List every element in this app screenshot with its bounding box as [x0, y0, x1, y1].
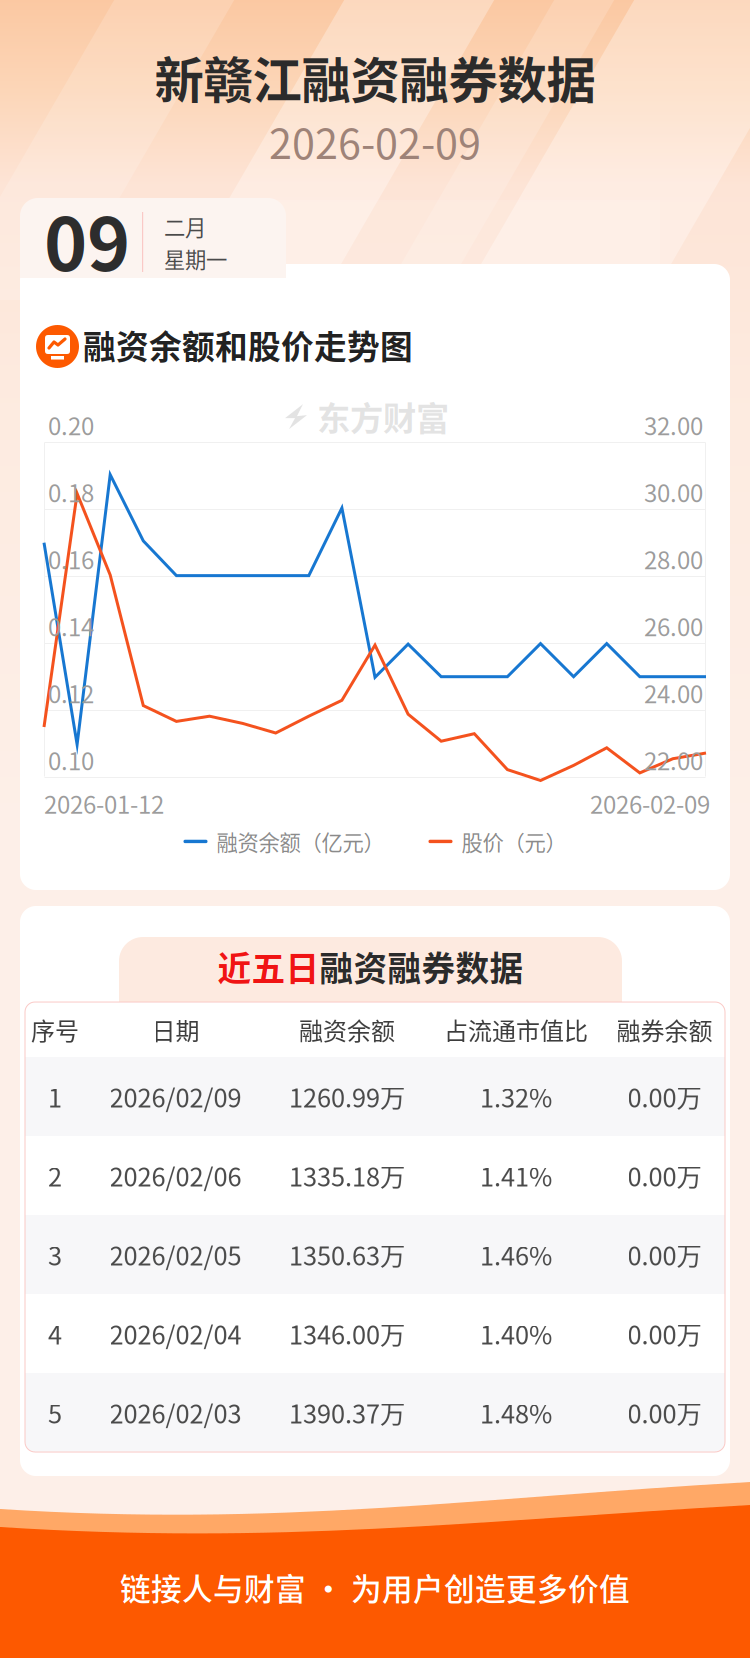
staticText: 1 [48, 1078, 62, 1115]
staticText: 二月 [164, 211, 206, 242]
staticText: 融资余额（亿元） [216, 826, 384, 857]
staticText: 1260.99万 [289, 1078, 405, 1115]
staticText: 1.48% [480, 1394, 552, 1431]
staticText: 1335.18万 [289, 1157, 405, 1194]
staticText: 22.00 [644, 742, 703, 777]
staticText: 2 [48, 1157, 62, 1194]
staticText: 东方财富 [317, 392, 449, 440]
staticText: 5 [48, 1394, 62, 1431]
staticText: 2026-02-09 [590, 786, 710, 821]
staticText: 2026/02/05 [109, 1236, 241, 1273]
staticText: 2026/02/09 [109, 1078, 241, 1115]
staticText: 1350.63万 [289, 1236, 405, 1273]
staticText: 24.00 [644, 675, 703, 710]
staticText: 30.00 [644, 474, 703, 509]
staticText: 2026/02/06 [109, 1157, 241, 1194]
staticText: 2026/02/03 [109, 1394, 241, 1431]
staticText: 1.40% [480, 1315, 552, 1352]
staticText: 0.18 [48, 474, 94, 509]
staticText: 0.14 [48, 608, 94, 643]
staticText: 1346.00万 [289, 1315, 405, 1352]
staticText: 链接人与财富 · 为用户创造更多价值 [120, 1565, 630, 1609]
staticText: 融资余额 [299, 1012, 395, 1047]
staticText: 1.41% [480, 1157, 552, 1194]
staticText: 近五日 [217, 942, 319, 991]
staticText: 1.32% [480, 1078, 552, 1115]
staticText: 0.12 [48, 675, 94, 710]
staticText: 26.00 [644, 608, 703, 643]
staticText: 融资融券数据 [319, 942, 523, 991]
staticText: 新赣江融资融券数据 [154, 41, 595, 112]
staticText: 0.16 [48, 541, 94, 576]
staticText: 0.20 [48, 407, 94, 442]
staticText: 2026-01-12 [44, 786, 164, 821]
staticText: 星期一 [164, 243, 227, 274]
staticText: 0.00万 [627, 1078, 701, 1115]
staticText: 0.00万 [627, 1236, 701, 1273]
staticText: 3 [48, 1236, 62, 1273]
staticText: 09 [44, 186, 130, 292]
staticText: 2026-02-09 [269, 111, 481, 171]
staticText: 0.00万 [627, 1315, 701, 1352]
staticText: 4 [48, 1315, 62, 1352]
staticText: 1.46% [480, 1236, 552, 1273]
staticText: 2026/02/04 [109, 1315, 241, 1352]
staticText: 0.00万 [627, 1157, 701, 1194]
staticText: 占流通市值比 [444, 1012, 588, 1047]
staticText: 日期 [151, 1012, 199, 1047]
staticText: 序号 [31, 1012, 79, 1047]
staticText: 32.00 [644, 407, 703, 442]
staticText: 0.10 [48, 742, 94, 777]
staticText: 0.00万 [627, 1394, 701, 1431]
staticText: 28.00 [644, 541, 703, 576]
staticText: 股价（元） [461, 826, 566, 857]
staticText: 融券余额 [616, 1012, 712, 1047]
staticText: 融资余额和股价走势图 [83, 321, 413, 368]
staticText: 1390.37万 [289, 1394, 405, 1431]
